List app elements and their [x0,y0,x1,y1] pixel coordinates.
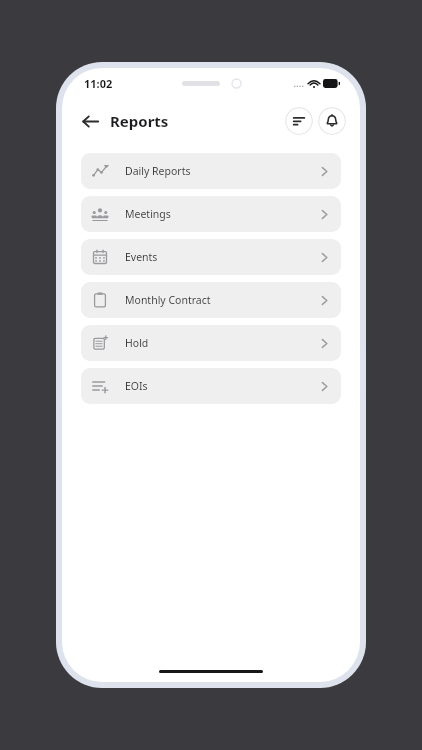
button[interactable]: Sort [285,107,313,135]
button[interactable]: Daily Reports [81,153,341,189]
staticText: Events [125,250,158,264]
staticText: 11:02 [84,76,113,91]
staticText: Hold [125,336,149,350]
staticText: EOIs [125,379,148,393]
button[interactable]: Back [74,105,106,137]
button[interactable]: Events [81,239,341,275]
staticText: Meetings [125,207,171,221]
button[interactable]: EOIs [81,368,341,404]
button[interactable]: Hold [81,325,341,361]
staticText: Daily Reports [125,164,191,178]
button[interactable]: Monthly Contract [81,282,341,318]
button[interactable]: Meetings [81,196,341,232]
button[interactable]: Notifications [318,107,346,135]
staticText: Monthly Contract [125,293,211,307]
staticText: Reports [110,111,169,131]
